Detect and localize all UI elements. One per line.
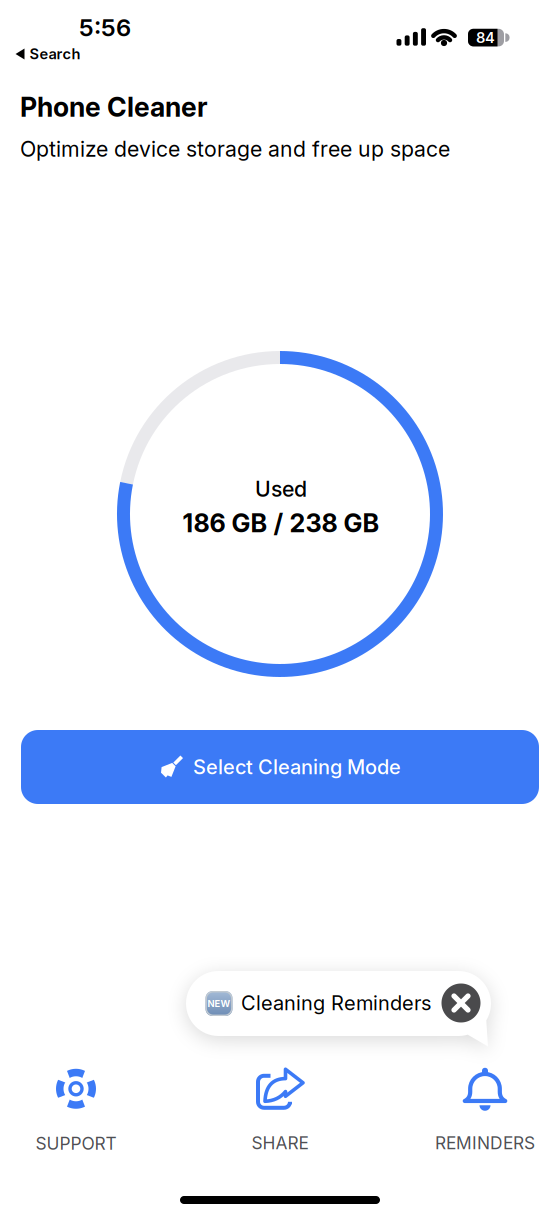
button[interactable]: Support bbox=[35, 1068, 116, 1154]
staticText: SUPPORT bbox=[35, 1133, 116, 1154]
staticText: Cleaning Reminders bbox=[241, 991, 431, 1015]
staticText: Select Cleaning Mode bbox=[193, 755, 401, 779]
staticText: NEW bbox=[207, 998, 230, 1009]
button[interactable]: Share bbox=[251, 1067, 308, 1153]
button[interactable]: Dismiss bbox=[441, 983, 480, 1022]
staticText: 5:56 bbox=[79, 13, 131, 42]
staticText: Search bbox=[29, 45, 80, 63]
staticText: SHARE bbox=[251, 1133, 308, 1153]
button[interactable]: Select Cleaning Mode bbox=[21, 730, 539, 804]
staticText: Used bbox=[255, 476, 307, 502]
staticText: 186 GB / 238 GB bbox=[182, 508, 379, 538]
staticText: 84 bbox=[476, 29, 495, 46]
button[interactable]: Back to Search bbox=[15, 45, 80, 63]
button[interactable]: Reminders bbox=[435, 1067, 535, 1153]
button[interactable]: NEW bbox=[186, 971, 491, 1047]
staticText: Phone Cleaner bbox=[20, 91, 208, 123]
staticText: REMINDERS bbox=[435, 1133, 535, 1153]
staticText: Optimize device storage and free up spac… bbox=[20, 136, 450, 162]
